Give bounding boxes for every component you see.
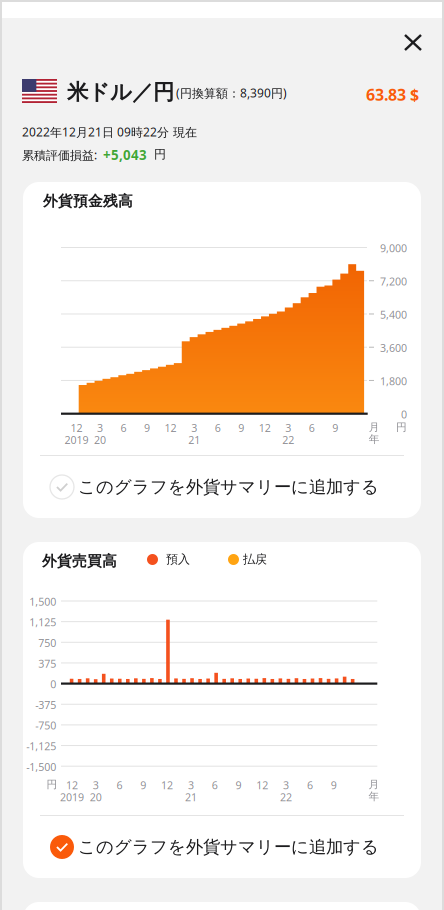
staticText: 12 [165, 421, 177, 435]
staticText: 払戻 [243, 552, 267, 567]
staticText: 月 [369, 421, 380, 434]
staticText: 6 [215, 421, 221, 435]
staticText: -1,500 [26, 760, 56, 774]
staticText: 3 [285, 421, 291, 435]
staticText: 円 [46, 778, 57, 791]
staticText: 1,125 [29, 615, 56, 629]
staticText: 3 [283, 778, 289, 792]
button[interactable]: このグラフを外貨サマリーに追加する [23, 456, 421, 518]
staticText: 9 [140, 778, 146, 792]
staticText: 6 [309, 421, 315, 435]
staticText: 0 [50, 677, 56, 691]
button[interactable]: このグラフを外貨サマリーに追加する [23, 816, 421, 878]
staticText: 6 [121, 421, 127, 435]
staticText: 0 [401, 407, 407, 421]
staticText: 3,600 [380, 341, 407, 355]
staticText: 750 [38, 636, 56, 650]
staticText: 9 [144, 421, 150, 435]
staticText: 3 [93, 778, 99, 792]
staticText: 5,400 [380, 307, 407, 322]
staticText: 2019 [60, 790, 84, 804]
staticText: 20 [94, 433, 106, 447]
staticText: 年 [368, 790, 379, 803]
staticText: 累積評価損益: [22, 147, 97, 163]
staticText: 375 [38, 656, 56, 671]
staticText: 21 [185, 790, 197, 804]
staticText: 外貨売買高 [42, 552, 117, 570]
staticText: 3 [188, 778, 194, 792]
staticText: 円 [396, 421, 407, 434]
staticText: 月 [368, 778, 379, 791]
staticText: 3 [97, 421, 103, 435]
staticText: 9 [235, 778, 241, 792]
staticText: 12 [259, 421, 271, 435]
staticText: -750 [35, 718, 56, 733]
staticText: -375 [35, 698, 56, 712]
staticText: 7,200 [380, 274, 407, 288]
staticText: 9 [332, 421, 338, 435]
staticText: 12 [70, 421, 82, 435]
staticText: (円換算額：8,390円) [176, 85, 287, 101]
staticText: 12 [256, 778, 268, 792]
staticText: 12 [161, 778, 173, 792]
staticText: 9 [238, 421, 244, 435]
staticText: 22 [282, 433, 294, 447]
staticText: +5,043 [103, 146, 147, 164]
staticText: 1,800 [380, 374, 407, 388]
staticText: 外貨預金残高 [43, 192, 133, 210]
button[interactable]: 閉じる [391, 21, 435, 65]
staticText: 22 [280, 790, 292, 804]
staticText: 6 [116, 778, 122, 792]
staticText: 12 [66, 778, 78, 792]
staticText: 1,500 [29, 594, 56, 609]
staticText: 20 [90, 790, 102, 804]
staticText: 米ドル／円 [67, 79, 174, 105]
staticText: 9 [331, 778, 337, 792]
staticText: 預入 [166, 552, 190, 567]
staticText: このグラフを外貨サマリーに追加する [78, 476, 379, 498]
staticText: -1,125 [26, 739, 56, 753]
staticText: 9,000 [380, 241, 407, 255]
staticText: 年 [369, 433, 380, 446]
staticText: 6 [307, 778, 313, 792]
staticText: 21 [188, 433, 200, 447]
staticText: 円 [154, 147, 166, 162]
staticText: 3 [191, 421, 197, 435]
staticText: 2022年12月21日 09時22分 現在 [22, 124, 197, 140]
staticText: 6 [212, 778, 218, 792]
staticText: 2019 [64, 433, 88, 447]
staticText: このグラフを外貨サマリーに追加する [78, 836, 379, 858]
staticText: 63.83 $ [366, 84, 419, 105]
